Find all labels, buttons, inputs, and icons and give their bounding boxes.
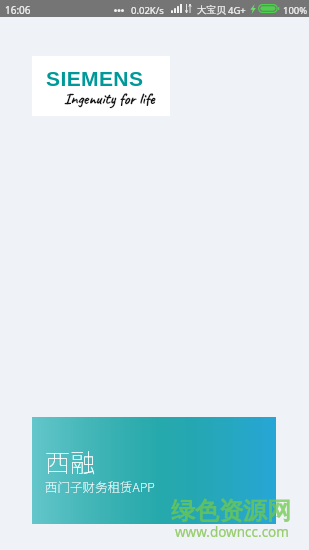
staticText: 绿色资源网	[171, 496, 291, 526]
staticText: 西融	[45, 443, 96, 479]
staticText: 西门子财务租赁APP	[45, 477, 155, 495]
staticText: 100%	[283, 4, 308, 17]
staticText: Ingenuity for life	[64, 89, 155, 109]
staticText: 4G+	[228, 4, 246, 17]
staticText: 16:06	[5, 3, 31, 17]
staticText: 大宝贝	[197, 4, 226, 16]
button[interactable]: 西融	[32, 417, 276, 524]
staticText: www.downcc.com	[175, 523, 289, 541]
staticText: SIEMENS	[46, 67, 144, 90]
staticText: 0.02K/s	[131, 4, 164, 17]
